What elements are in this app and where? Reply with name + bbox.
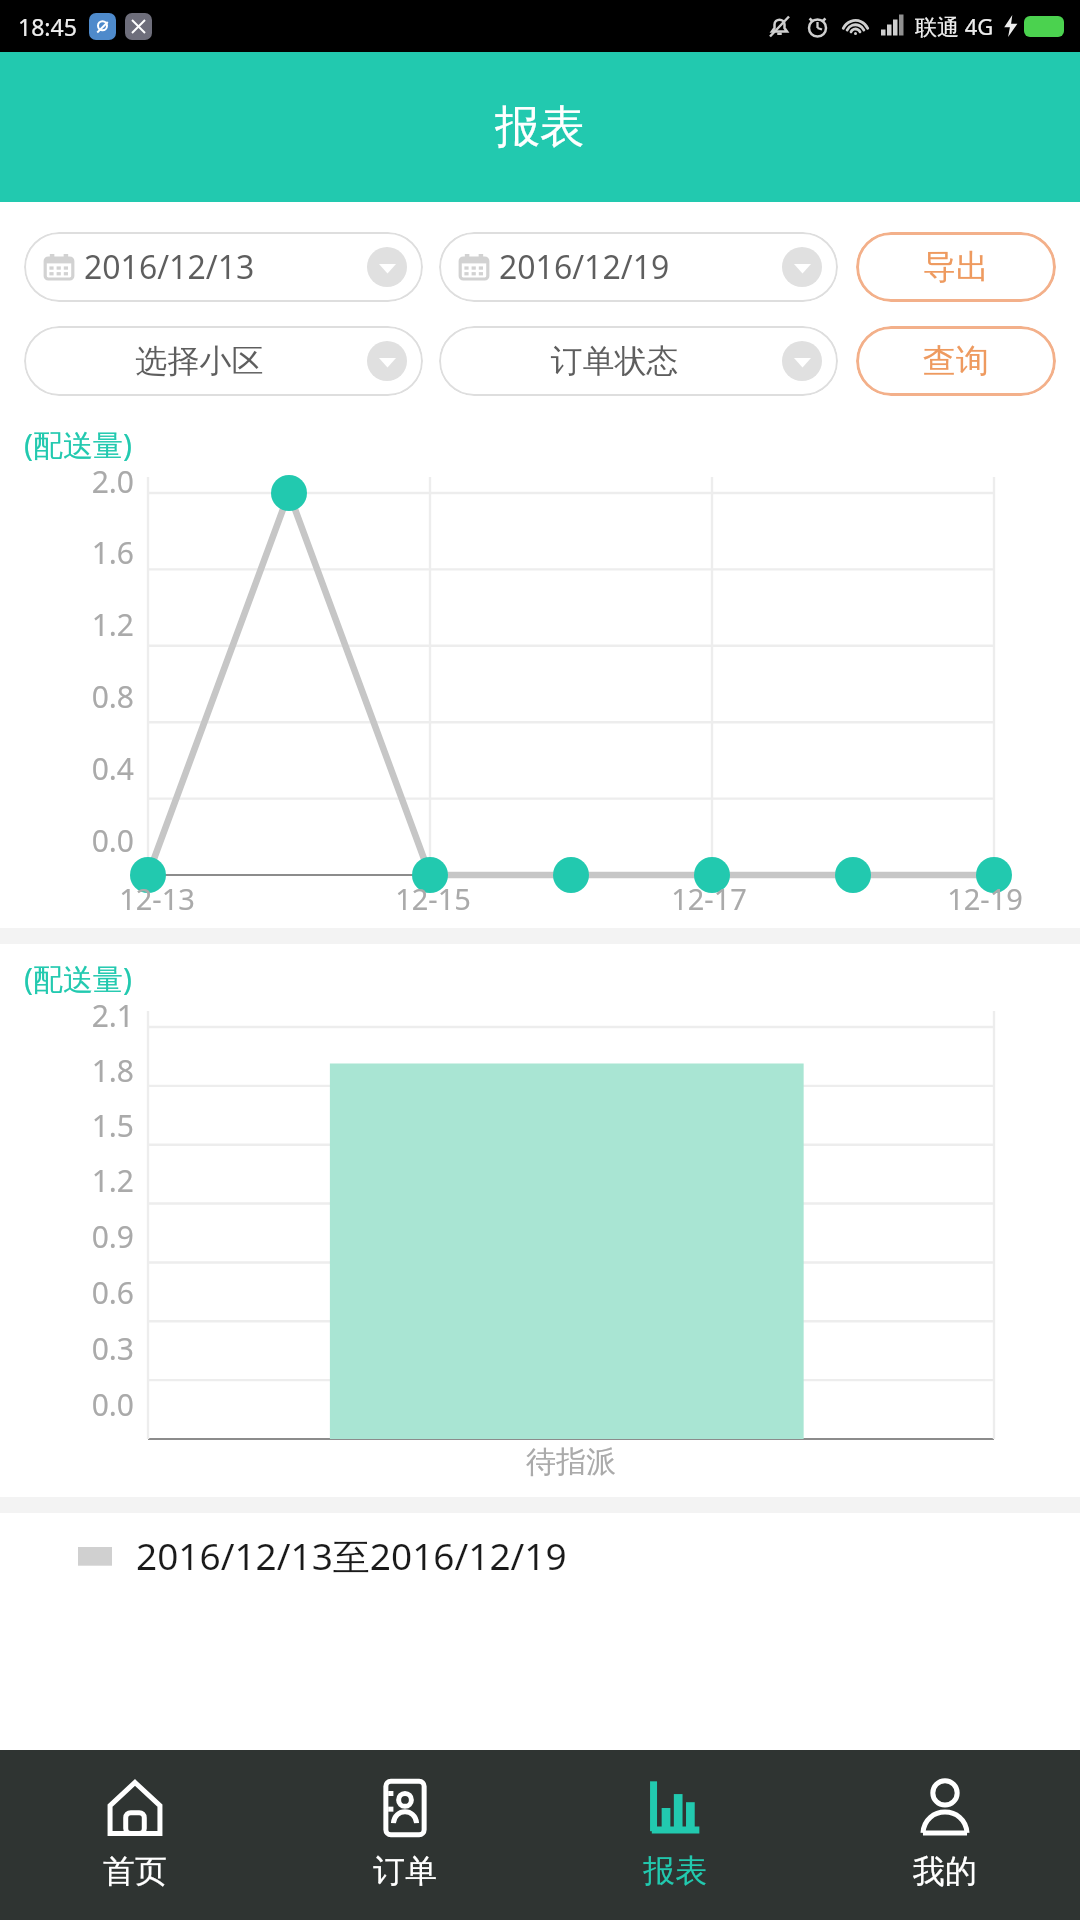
button[interactable]: 报表 xyxy=(540,1750,810,1920)
staticText: 2016/12/19 xyxy=(499,245,776,289)
staticText: 首页 xyxy=(103,1851,167,1891)
staticText: 12-15 xyxy=(364,879,502,918)
staticText: 0.4 xyxy=(0,748,134,789)
staticText: 1.2 xyxy=(0,1160,134,1201)
staticText: 18:45 xyxy=(18,11,77,42)
button[interactable]: 首页 xyxy=(0,1750,270,1920)
button[interactable]: 2016/12/19 xyxy=(439,232,838,302)
staticText: (配送量) xyxy=(24,958,132,999)
staticText: 0.6 xyxy=(0,1272,134,1313)
staticText: 报表 xyxy=(643,1851,707,1891)
staticText: 0.0 xyxy=(0,1384,134,1425)
staticText: 2.0 xyxy=(0,461,134,502)
staticText: 1.8 xyxy=(0,1050,134,1091)
staticText: 2.1 xyxy=(0,995,134,1036)
staticText: 12-19 xyxy=(916,879,1054,918)
staticText: 导出 xyxy=(923,246,989,288)
staticText: 2016/12/13 xyxy=(84,245,361,289)
button[interactable]: 2016/12/13 xyxy=(24,232,423,302)
staticText: 查询 xyxy=(923,340,989,382)
button[interactable]: 订单状态 xyxy=(439,326,838,396)
staticText: 0.3 xyxy=(0,1328,134,1369)
staticText: (配送量) xyxy=(24,424,132,465)
staticText: 1.5 xyxy=(0,1105,134,1146)
other: 报表 xyxy=(646,1779,704,1837)
staticText: 报表 xyxy=(495,99,585,156)
staticText xyxy=(502,879,640,918)
staticText: 12-17 xyxy=(640,879,778,918)
staticText: 选择小区 xyxy=(38,341,361,381)
staticText: 0.8 xyxy=(0,676,134,717)
staticText: 1.6 xyxy=(0,532,134,573)
staticText: 2016/12/13至2016/12/19 xyxy=(136,1530,567,1581)
staticText: 联通 4G xyxy=(915,11,994,41)
staticText: 12-13 xyxy=(88,879,226,918)
staticText xyxy=(778,879,916,918)
button[interactable]: 导出 xyxy=(856,232,1056,302)
other: 我的 xyxy=(916,1779,974,1837)
staticText: 1.2 xyxy=(0,604,134,645)
button[interactable]: 查询 xyxy=(856,326,1056,396)
other: 订单 xyxy=(376,1779,434,1837)
staticText: 我的 xyxy=(913,1851,977,1891)
other: 首页 xyxy=(106,1779,164,1837)
staticText: 0.9 xyxy=(0,1216,134,1257)
button[interactable]: 我的 xyxy=(810,1750,1080,1920)
button[interactable]: 选择小区 xyxy=(24,326,423,396)
staticText: 订单状态 xyxy=(453,341,776,381)
button[interactable]: 订单 xyxy=(270,1750,540,1920)
staticText: 0.0 xyxy=(0,820,134,861)
staticText: 待指派 xyxy=(526,1443,616,1481)
staticText: 订单 xyxy=(373,1851,437,1891)
